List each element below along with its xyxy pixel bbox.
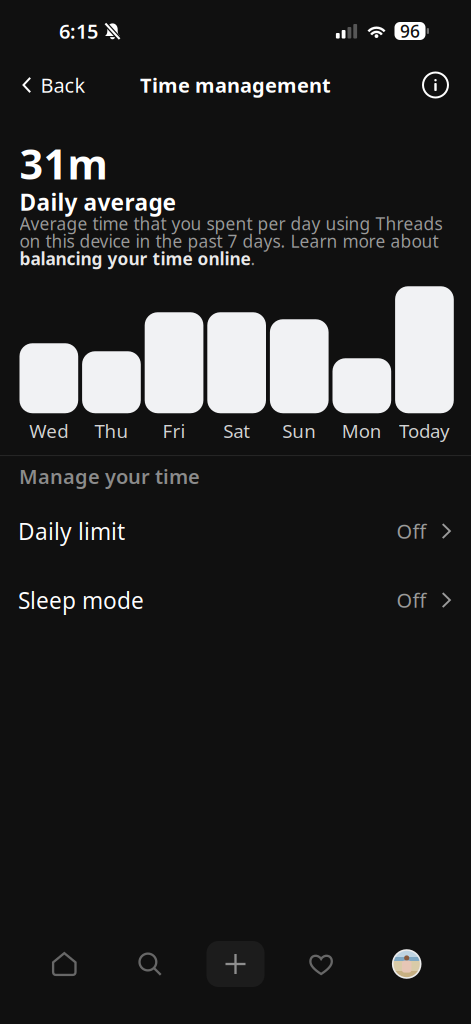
staticText: 31m [19, 136, 107, 191]
staticText: Daily limit [18, 516, 125, 546]
staticText: 96 [400, 19, 420, 42]
staticText: Time management [140, 72, 331, 98]
button[interactable]: Sleep mode [0, 566, 471, 635]
staticText: Off [396, 518, 426, 544]
button[interactable]: Create [193, 934, 278, 994]
staticText: Mon [342, 418, 382, 443]
button[interactable]: Search [107, 934, 193, 994]
button[interactable]: Profile [364, 934, 449, 994]
staticText: Average time that you spent per day usin… [19, 212, 442, 270]
button[interactable]: Information [408, 62, 471, 108]
staticText: Manage your time [19, 463, 200, 490]
button[interactable]: Back [0, 62, 99, 108]
staticText: Sleep mode [18, 585, 144, 615]
staticText: Off [396, 587, 426, 613]
staticText: Wed [29, 418, 68, 443]
staticText: Sun [282, 418, 316, 443]
staticText: Daily average [19, 187, 176, 217]
button[interactable]: Daily limit [0, 497, 471, 566]
staticText: Sat [223, 418, 250, 443]
staticText: 6:15 [59, 18, 98, 44]
button[interactable]: Home [21, 934, 107, 994]
staticText: Today [399, 418, 450, 443]
button[interactable]: Activity [278, 934, 364, 994]
staticText: Back [40, 72, 85, 98]
staticText: Fri [162, 418, 185, 443]
staticText: Thu [94, 418, 128, 443]
